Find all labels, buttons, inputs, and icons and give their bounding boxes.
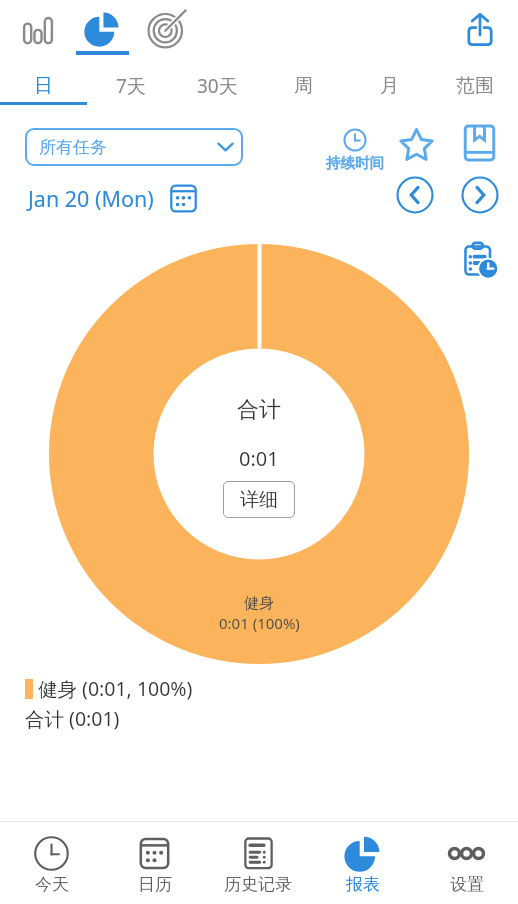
button[interactable]: Pie chart bbox=[72, 0, 132, 58]
button[interactable]: Goals bbox=[137, 0, 197, 58]
staticText: 日历 bbox=[138, 874, 172, 895]
button[interactable]: 范围 bbox=[432, 62, 518, 108]
staticText: 范围 bbox=[456, 74, 494, 98]
button[interactable]: 日 bbox=[0, 62, 87, 108]
button[interactable]: 月 bbox=[346, 62, 432, 108]
staticText: 月 bbox=[380, 74, 399, 98]
staticText: 0:01 bbox=[239, 445, 279, 472]
staticText: 日 bbox=[34, 74, 53, 98]
staticText: 合计 bbox=[237, 396, 281, 424]
button[interactable]: 报表 bbox=[310, 822, 414, 904]
button[interactable]: Previous bbox=[392, 172, 438, 218]
staticText: 健身 (0:01, 100%) bbox=[38, 675, 193, 702]
button[interactable]: 30天 bbox=[174, 62, 260, 108]
button[interactable]: 今天 bbox=[0, 822, 103, 904]
button[interactable]: Jan 20 (Mon) bbox=[28, 182, 200, 215]
staticText: Jan 20 (Mon) bbox=[28, 184, 154, 213]
staticText: 30天 bbox=[197, 73, 238, 99]
staticText: 详细 bbox=[240, 488, 278, 512]
staticText: 报表 bbox=[346, 874, 380, 895]
button[interactable]: 持续时间 bbox=[322, 124, 388, 174]
staticText: 今天 bbox=[35, 874, 69, 895]
button[interactable]: Bookmark bbox=[455, 119, 503, 167]
button[interactable]: 周 bbox=[260, 62, 346, 108]
staticText: 健身 bbox=[244, 594, 274, 613]
button[interactable]: 日历 bbox=[103, 822, 206, 904]
button[interactable]: Share bbox=[455, 0, 505, 58]
button[interactable]: Time log bbox=[456, 235, 504, 283]
staticText: 持续时间 bbox=[326, 154, 384, 172]
button[interactable]: 所有任务 bbox=[25, 128, 243, 166]
button[interactable]: 历史记录 bbox=[206, 822, 310, 904]
button[interactable]: Next bbox=[457, 172, 503, 218]
button[interactable]: Bar chart bbox=[8, 0, 68, 58]
button[interactable]: 详细 bbox=[223, 481, 295, 518]
button[interactable]: 设置 bbox=[414, 822, 518, 904]
button[interactable]: 合计 (0:01) bbox=[25, 705, 120, 732]
button[interactable]: 7天 bbox=[87, 62, 174, 108]
staticText: 7天 bbox=[116, 73, 146, 99]
button[interactable]: Favorite bbox=[392, 120, 440, 168]
staticText: 周 bbox=[294, 74, 313, 98]
button[interactable]: 健身 (0:01, 100%) bbox=[25, 675, 193, 702]
staticText: 所有任务 bbox=[39, 137, 107, 158]
staticText: 设置 bbox=[450, 874, 484, 895]
staticText: 历史记录 bbox=[224, 874, 292, 895]
staticText: 0:01 (100%) bbox=[219, 613, 300, 633]
